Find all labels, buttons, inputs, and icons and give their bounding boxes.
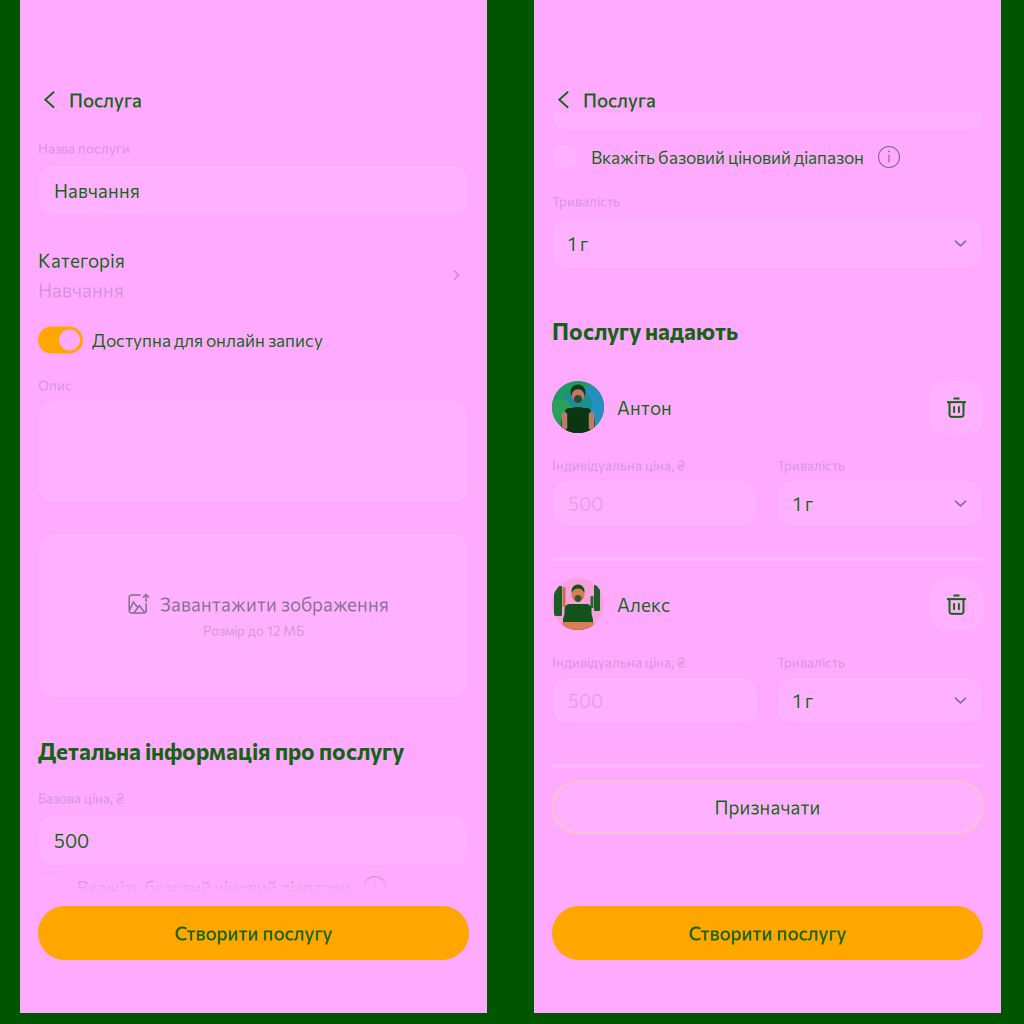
staticText: Назва послуги [38, 140, 130, 156]
staticText: Індивідуальна ціна, ₴ [552, 654, 685, 670]
staticText: Тривалість [777, 457, 845, 473]
staticText: Категорія [38, 249, 125, 271]
staticText: Вкажіть базовий ціновий діапазон [77, 876, 350, 898]
staticText: i [887, 147, 891, 165]
staticText: Базова ціна, ₴ [38, 790, 124, 806]
button[interactable]: Призначати [552, 781, 983, 833]
staticText: 1 г [793, 689, 813, 712]
staticText: 500 [568, 492, 603, 515]
button[interactable]: Завантажити зображення [38, 533, 469, 698]
button[interactable]: Створити послугу [38, 906, 469, 960]
staticText: Детальна інформація про послугу [38, 737, 404, 765]
button[interactable]: Створити послугу [552, 906, 983, 960]
staticText: Індивідуальна ціна, ₴ [552, 457, 685, 473]
button[interactable]: Видалити [930, 578, 983, 631]
staticText: Алекс [617, 593, 670, 616]
staticText: Навчання [54, 179, 140, 202]
staticText: Антон [617, 396, 672, 419]
staticText: Послуга [583, 89, 656, 111]
button[interactable]: Послуга [534, 83, 1001, 117]
staticText: Призначати [714, 796, 820, 818]
staticText: Послуга [69, 89, 142, 111]
staticText: 1 г [568, 232, 588, 255]
staticText: Опис [38, 377, 72, 393]
button[interactable]: Категорія [38, 251, 469, 299]
staticText: Тривалість [552, 193, 620, 209]
staticText: 500 [54, 829, 89, 852]
staticText: Вкажіть базовий ціновий діапазон [591, 146, 864, 168]
staticText: Створити послугу [174, 922, 332, 944]
staticText: Доступна для онлайн запису [92, 329, 323, 351]
button[interactable]: Видалити [930, 381, 983, 434]
staticText: 500 [568, 689, 603, 712]
staticText: Послугу надають [552, 317, 738, 345]
staticText: Тривалість [777, 654, 845, 670]
staticText: 1 г [793, 492, 813, 515]
staticText: Завантажити зображення [160, 592, 389, 615]
staticText: Навчання [38, 278, 124, 301]
staticText: i [373, 877, 377, 895]
button[interactable]: Доступна для онлайн запису [38, 323, 469, 357]
button[interactable]: Послуга [20, 83, 487, 117]
staticText: Розмір до 12 МБ [203, 622, 304, 639]
staticText: Створити послугу [688, 922, 846, 944]
